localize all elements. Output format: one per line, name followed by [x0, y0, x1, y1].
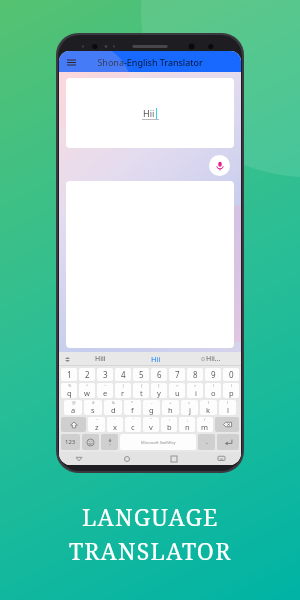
button[interactable]: 9: [205, 368, 221, 381]
staticText: +: [169, 400, 172, 405]
staticText: Hii…: [206, 354, 221, 364]
staticText: 2: [85, 369, 90, 380]
staticText: u: [175, 388, 180, 398]
button[interactable]: 0: [223, 368, 239, 381]
button[interactable]: 2: [79, 368, 95, 381]
staticText: ~: [96, 417, 99, 422]
staticText: i: [195, 388, 197, 398]
button[interactable]: +: [162, 400, 179, 415]
staticText: 123: [65, 438, 76, 446]
button[interactable]: Menu: [63, 54, 79, 70]
button[interactable]: Emoji: [82, 434, 99, 450]
button[interactable]: <: [169, 383, 185, 398]
staticText: TRANSLATOR: [69, 535, 232, 566]
button[interactable]: }: [151, 383, 167, 398]
button[interactable]: Hide keyboard: [216, 453, 227, 464]
staticText: (: [208, 400, 210, 405]
button[interactable]: ": [143, 417, 159, 432]
staticText: q: [67, 388, 72, 398]
staticText: 1: [67, 369, 72, 380]
staticText: LANGUAGE: [82, 501, 219, 532]
button[interactable]: .: [198, 434, 215, 450]
button[interactable]: &: [104, 400, 122, 415]
staticText: ;: [187, 417, 189, 422]
button[interactable]: Enter: [217, 434, 239, 450]
button[interactable]: Microsoft SwiftKey: [120, 434, 196, 450]
button[interactable]: 4: [115, 368, 131, 381]
staticText: d: [111, 405, 116, 415]
staticText: g: [149, 405, 154, 415]
button[interactable]: Hii: [128, 352, 183, 366]
staticText: @: [72, 400, 76, 405]
button[interactable]: Expand: [62, 354, 72, 364]
button[interactable]: @: [64, 400, 82, 415]
staticText: :: [169, 417, 171, 422]
staticText: r: [121, 388, 125, 398]
button[interactable]: -: [143, 400, 160, 415]
staticText: 3: [103, 369, 108, 380]
button[interactable]: #: [84, 400, 102, 415]
button[interactable]: ': [125, 417, 141, 432]
button[interactable]: ): [223, 383, 239, 398]
staticText: e: [103, 388, 108, 398]
button[interactable]: 8: [187, 368, 203, 381]
button[interactable]: 123: [61, 434, 80, 450]
button[interactable]: /: [197, 417, 213, 432]
staticText: .: [206, 437, 208, 447]
staticText: l: [227, 405, 229, 415]
staticText: v: [149, 422, 153, 432]
staticText: 6: [157, 369, 162, 380]
staticText: 0: [229, 369, 234, 380]
button[interactable]: Home: [121, 453, 132, 464]
button[interactable]: ^: [79, 383, 95, 398]
button[interactable]: 7: [169, 368, 185, 381]
staticText: z: [95, 422, 99, 432]
button[interactable]: (: [205, 383, 221, 398]
staticText: #: [92, 400, 95, 405]
button[interactable]: %: [61, 383, 77, 398]
staticText: m: [201, 422, 209, 432]
button[interactable]: Voice typing: [101, 434, 118, 450]
staticText: Shona-English Translator: [97, 56, 203, 68]
button[interactable]: ;: [179, 417, 195, 432]
button[interactable]: {: [133, 383, 149, 398]
staticText: Hiii: [95, 354, 106, 364]
button[interactable]: Voice input: [209, 155, 230, 176]
button[interactable]: >: [187, 383, 203, 398]
button[interactable]: ~: [88, 417, 105, 432]
button[interactable]: 6: [151, 368, 167, 381]
button[interactable]: Hiii: [72, 352, 128, 366]
staticText: 9: [211, 369, 216, 380]
staticText: j: [189, 405, 191, 415]
staticText: f: [131, 405, 134, 415]
staticText: b: [167, 422, 172, 432]
staticText: Microsoft SwiftKey: [141, 440, 176, 445]
button[interactable]: (: [200, 400, 217, 415]
button[interactable]: 1: [61, 368, 77, 381]
staticText: {: [141, 383, 143, 388]
button[interactable]: *: [124, 400, 141, 415]
button[interactable]: Shift: [61, 417, 86, 432]
staticText: ): [231, 383, 233, 388]
staticText: Hii: [151, 354, 161, 364]
button[interactable]: ): [219, 400, 236, 415]
staticText: }: [158, 383, 160, 388]
staticText: =: [188, 400, 191, 405]
button[interactable]: =: [181, 400, 198, 415]
button[interactable]: Backspace: [215, 417, 239, 432]
button[interactable]: 3: [97, 368, 113, 381]
button[interactable]: Hii: [66, 78, 234, 148]
button[interactable]: :: [161, 417, 177, 432]
button[interactable]: 5: [133, 368, 149, 381]
staticText: 8: [193, 369, 198, 380]
button[interactable]: |: [115, 383, 131, 398]
staticText: n: [185, 422, 190, 432]
button[interactable]: ~: [97, 383, 113, 398]
button[interactable]: Recents: [168, 453, 179, 464]
button[interactable]: `: [107, 417, 123, 432]
button[interactable]: Hii…: [183, 352, 238, 366]
button[interactable]: Back: [73, 453, 84, 464]
staticText: a: [71, 405, 76, 415]
staticText: ': [133, 417, 134, 422]
